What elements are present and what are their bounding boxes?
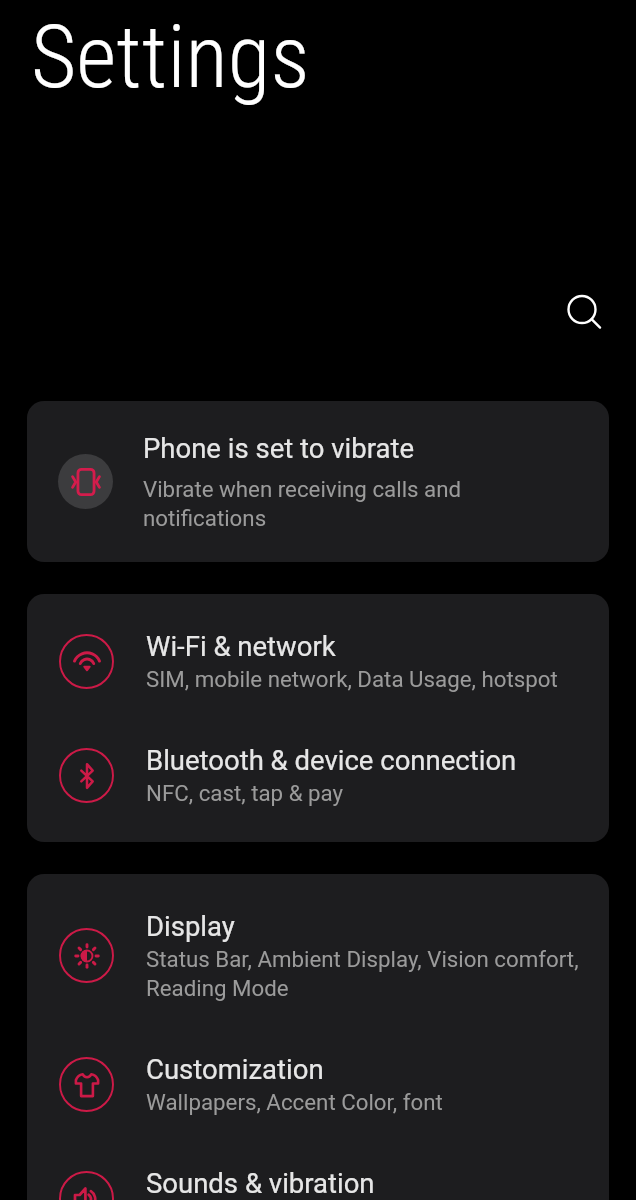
button[interactable]: Wi-Fi & network (27, 604, 609, 718)
button[interactable]: Display (27, 884, 609, 1027)
button[interactable]: Bluetooth & device connection (27, 718, 609, 832)
button[interactable]: Sounds & vibration (27, 1141, 609, 1200)
button[interactable]: Search (559, 287, 607, 335)
button[interactable]: Customization (27, 1027, 609, 1141)
staticText: Wallpapers, Accent Color, font (146, 1087, 443, 1116)
staticText: Settings (31, 6, 310, 109)
staticText: SIM, mobile network, Data Usage, hotspot (146, 664, 558, 693)
staticText: Wi-Fi & network (146, 629, 336, 664)
staticText: Phone is set to vibrate (143, 431, 415, 466)
staticText: NFC, cast, tap & pay (146, 778, 344, 807)
staticText: Display (146, 909, 235, 944)
staticText: Bluetooth & device connection (146, 743, 517, 778)
staticText: Status Bar, Ambient Display, Vision comf… (146, 944, 587, 1002)
staticText: Sounds & vibration (146, 1166, 375, 1200)
staticText: Customization (146, 1052, 324, 1087)
staticText: Vibrate when receiving calls and notific… (143, 474, 573, 532)
button[interactable]: Phone is set to vibrate (27, 411, 609, 552)
